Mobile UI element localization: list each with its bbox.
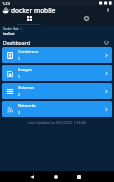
button[interactable]: Volumes: [2, 83, 112, 99]
staticText: Volumes: [18, 85, 35, 90]
button[interactable]: Images: [2, 65, 112, 81]
staticText: 1: [18, 74, 20, 79]
button[interactable]: Networks: [2, 101, 112, 117]
staticText: 1: [18, 56, 20, 61]
button[interactable]: Refresh: [103, 39, 110, 46]
staticText: 2: [18, 92, 20, 97]
staticText: Images: [18, 67, 32, 72]
button[interactable]: Dashboard tab: [0, 14, 57, 26]
button[interactable]: Recent apps: [73, 171, 85, 182]
staticText: Containers: [18, 49, 39, 54]
staticText: 3: [18, 110, 20, 115]
staticText: docker mobile: [11, 6, 56, 14]
staticText: Docker Host: [3, 27, 19, 31]
button[interactable]: Containers: [2, 47, 112, 63]
button[interactable]: Home: [50, 171, 62, 182]
button[interactable]: More options: [104, 6, 112, 14]
staticText: Dashboard: [3, 39, 30, 46]
button[interactable]: Settings tab: [57, 14, 114, 26]
button[interactable]: Back: [26, 171, 38, 182]
staticText: localhost: [3, 32, 15, 36]
staticText: Last Updated at 4/21/2021 1:56:46: [0, 120, 114, 125]
staticText: Networks: [18, 103, 37, 108]
staticText: 1:23: [2, 1, 10, 6]
